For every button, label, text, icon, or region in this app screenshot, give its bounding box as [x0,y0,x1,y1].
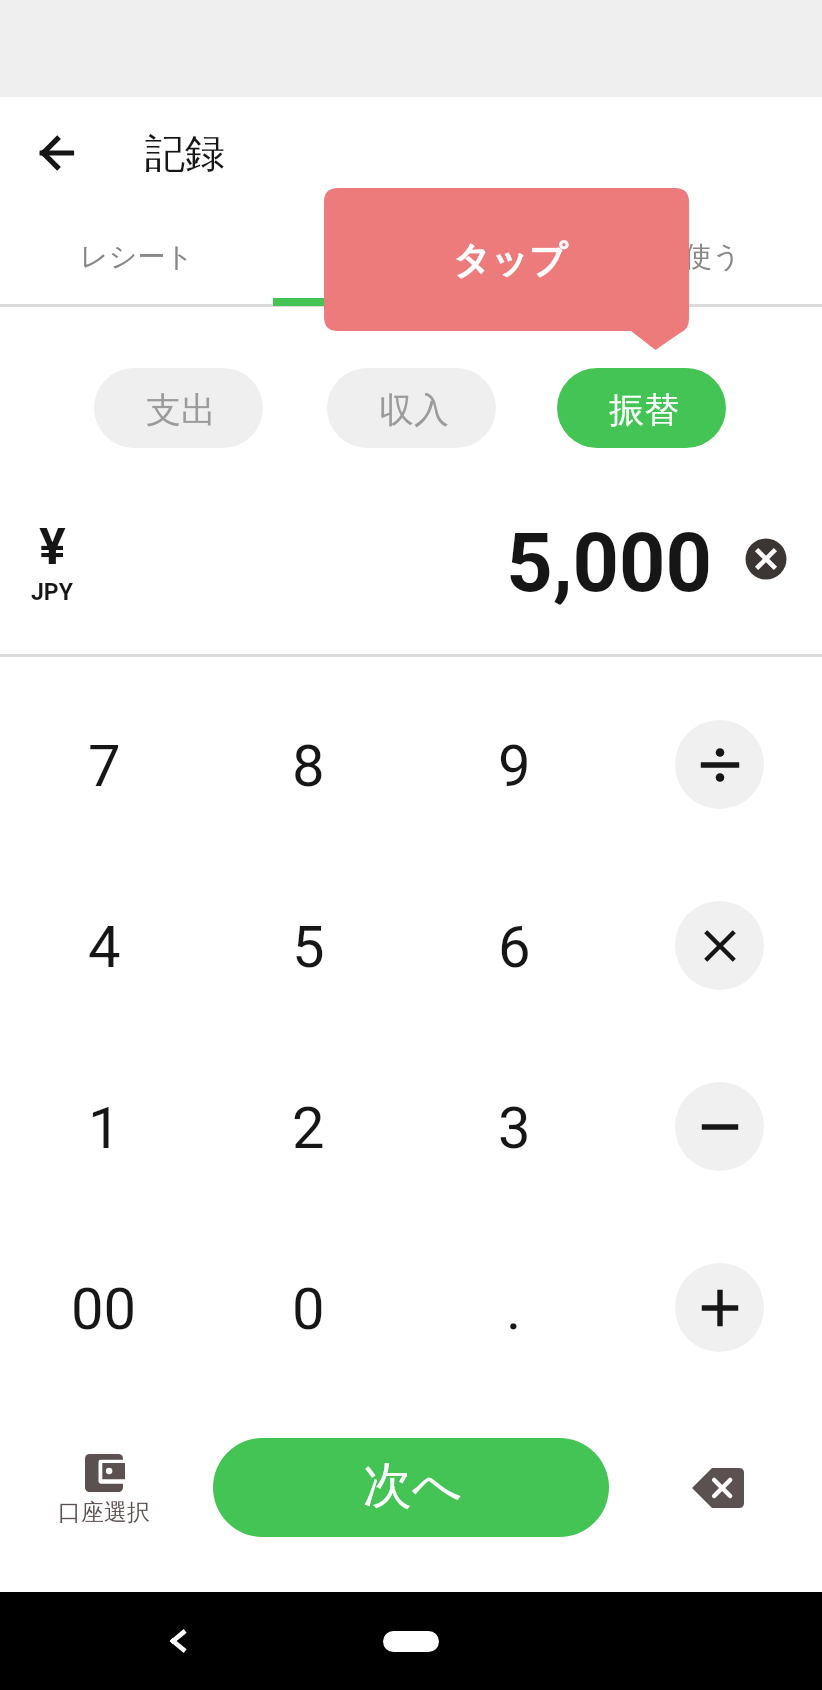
staticText: JPY [31,579,73,606]
button[interactable]: 0 [223,1249,393,1369]
staticText: 5,000 [506,516,712,611]
staticText: 00 [71,1275,137,1343]
staticText: 4 [88,913,121,981]
staticText: タップ [453,237,567,284]
button[interactable]: 6 [429,887,599,1007]
button[interactable]: 1 [19,1068,189,1188]
staticText: 支出 [146,388,216,432]
button[interactable]: ¥ [20,505,100,620]
staticText: 1 [88,1094,121,1162]
staticText: 0 [292,1275,325,1343]
button[interactable]: Multiply [659,885,779,1005]
staticText: 貯める [382,239,468,274]
staticText: 9 [498,732,531,800]
button[interactable]: 使う [575,210,822,302]
button[interactable]: 00 [19,1249,189,1369]
staticText: 振替 [609,388,679,432]
button[interactable]: 3 [429,1068,599,1188]
button[interactable]: . [429,1249,599,1369]
button[interactable]: 4 [19,887,189,1007]
button[interactable]: 支出 [94,368,263,448]
button[interactable]: Minus [659,1066,779,1186]
button[interactable]: 次へ [213,1438,609,1537]
staticText: 3 [498,1094,531,1162]
staticText: 7 [88,732,121,800]
button[interactable]: 8 [223,706,393,826]
button[interactable]: 貯める [288,210,562,302]
button[interactable]: 収入 [327,368,496,448]
button[interactable]: Back [142,1605,214,1677]
button[interactable]: Plus [659,1247,779,1367]
staticText: 2 [292,1094,325,1162]
staticText: 使う [684,239,741,274]
button[interactable]: 口座選択 [44,1454,164,1527]
staticText: 8 [292,732,325,800]
button[interactable]: Home [383,1631,439,1652]
staticText: . [506,1275,522,1343]
staticText: 口座選択 [58,1498,150,1527]
button[interactable]: 2 [223,1068,393,1188]
button[interactable]: 9 [429,706,599,826]
button[interactable]: タップ [324,188,689,331]
button[interactable]: Clear amount [740,533,792,585]
staticText: ¥ [39,518,66,577]
button[interactable]: レシート [0,210,274,302]
staticText: 5 [292,913,325,981]
button[interactable]: Backspace [682,1452,754,1524]
staticText: 収入 [379,388,449,432]
button[interactable]: 7 [19,706,189,826]
button[interactable]: Divide [659,704,779,824]
button[interactable]: Back [16,113,96,193]
button[interactable]: 振替 [557,368,726,448]
button[interactable]: 5 [223,887,393,1007]
staticText: 6 [498,913,531,981]
staticText: 記録 [145,128,225,178]
staticText: 次へ [363,1455,463,1517]
staticText: レシート [80,239,194,274]
